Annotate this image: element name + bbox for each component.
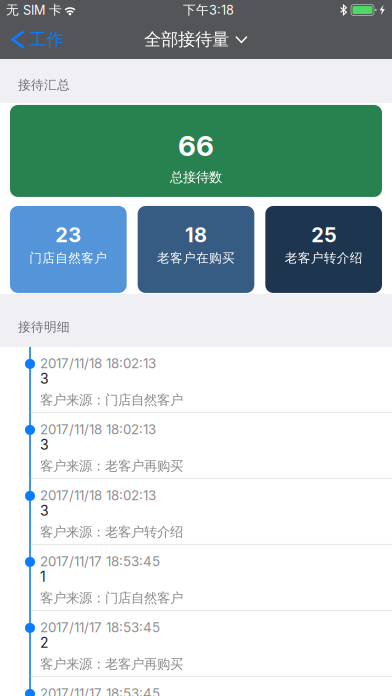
- button[interactable]: 工作: [0, 20, 73, 59]
- button[interactable]: 25: [265, 206, 382, 293]
- staticText: 3: [40, 372, 49, 385]
- staticText: 2017/11/17 18:53:45: [40, 555, 160, 568]
- button[interactable]: 2017/11/18 18:02:13: [0, 347, 392, 413]
- button[interactable]: 23: [10, 206, 127, 293]
- button[interactable]: 2017/11/18 18:02:13: [0, 479, 392, 545]
- staticText: 3: [40, 438, 49, 451]
- staticText: 25: [311, 223, 336, 247]
- staticText: 工作: [29, 29, 63, 50]
- staticText: 接待汇总: [18, 77, 70, 93]
- button[interactable]: 18: [138, 206, 254, 293]
- staticText: 客户来源：门店自然客户: [40, 591, 183, 605]
- button[interactable]: 2017/11/17 18:53:45: [0, 545, 392, 611]
- button[interactable]: 全部接待量: [134, 20, 258, 59]
- staticText: 老客户转介绍: [285, 250, 363, 266]
- staticText: 全部接待量: [144, 29, 229, 50]
- staticText: 1: [40, 570, 46, 583]
- staticText: 2017/11/18 18:02:13: [40, 489, 156, 502]
- staticText: 无 SIM 卡: [6, 2, 62, 18]
- staticText: 3: [40, 504, 49, 517]
- staticText: 客户来源：老客户再购买: [40, 657, 183, 671]
- staticText: 客户来源：老客户再购买: [40, 459, 183, 473]
- staticText: 2017/11/17 18:53:45: [40, 621, 160, 634]
- staticText: 客户来源：门店自然客户: [40, 393, 183, 407]
- staticText: 下午3:18: [183, 2, 234, 18]
- staticText: 门店自然客户: [29, 250, 107, 266]
- staticText: 2: [40, 636, 49, 649]
- staticText: 接待明细: [18, 319, 70, 335]
- staticText: 18: [185, 223, 207, 247]
- staticText: 23: [55, 223, 81, 247]
- staticText: 客户来源：老客户转介绍: [40, 525, 183, 539]
- staticText: 总接待数: [170, 169, 222, 186]
- staticText: 2017/11/17 18:53:45: [40, 687, 160, 696]
- staticText: 2017/11/18 18:02:13: [40, 357, 156, 370]
- staticText: 66: [178, 129, 214, 163]
- staticText: 2017/11/18 18:02:13: [40, 423, 156, 436]
- button[interactable]: 2017/11/17 18:53:45: [0, 611, 392, 677]
- button[interactable]: 66: [10, 105, 382, 197]
- button[interactable]: 2017/11/17 18:53:45: [0, 677, 392, 696]
- staticText: 老客户在购买: [157, 250, 235, 266]
- button[interactable]: 2017/11/18 18:02:13: [0, 413, 392, 479]
